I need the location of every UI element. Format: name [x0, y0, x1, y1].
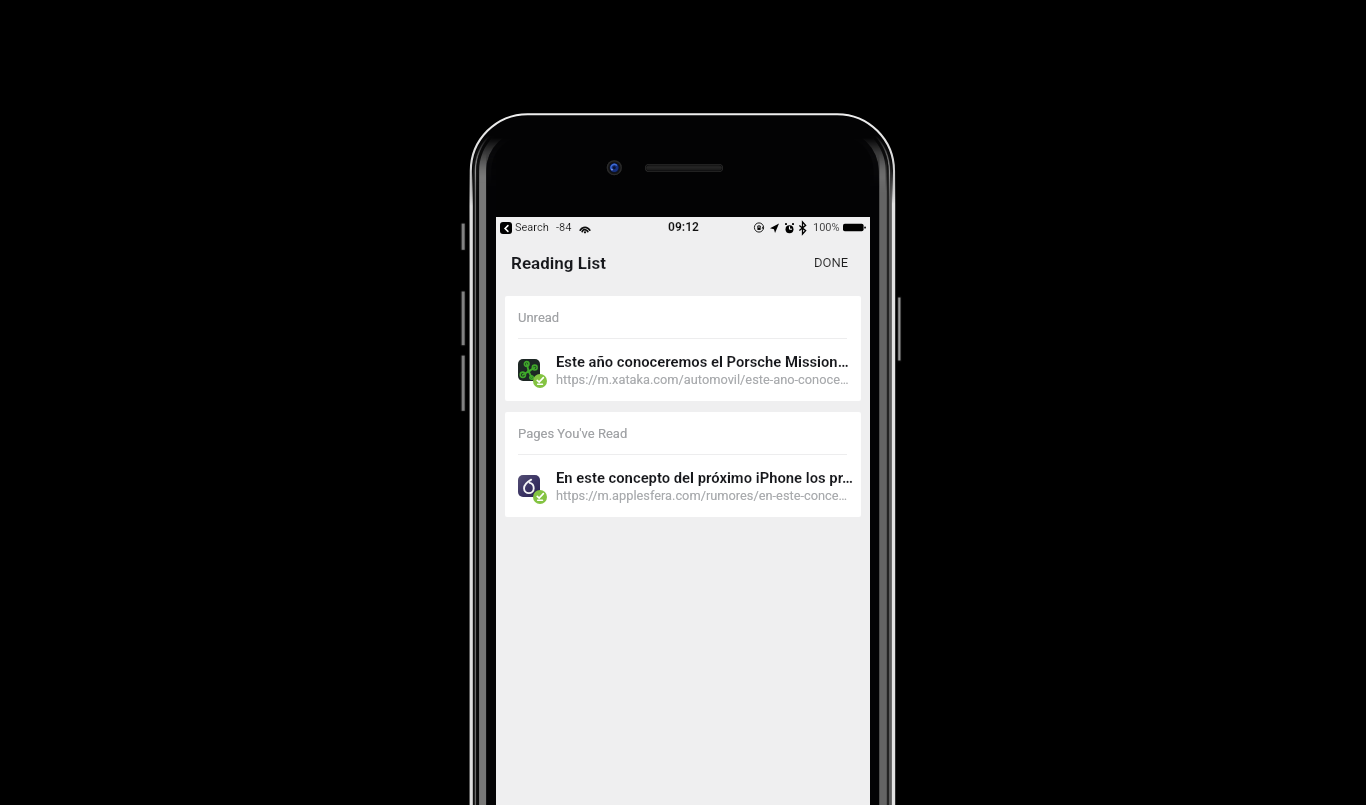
staticText: Este año conoceremos el Porsche Mission…	[556, 353, 849, 370]
staticText: Unread	[518, 310, 560, 325]
staticText: En este concepto del próximo iPhone los …	[556, 469, 853, 486]
button[interactable]: Este año conoceremos el Porsche Mission…	[505, 339, 861, 401]
staticText: Pages You've Read	[518, 426, 628, 441]
button[interactable]: Back to Search	[500, 222, 512, 234]
button[interactable]: En este concepto del próximo iPhone los …	[505, 455, 861, 517]
staticText: 09:12	[668, 220, 699, 234]
staticText: DONE	[814, 255, 849, 270]
staticText: Search	[515, 221, 549, 234]
button[interactable]: DONE	[793, 245, 870, 280]
staticText: https://m.applesfera.com/rumores/en-este…	[556, 488, 848, 503]
staticText: -84	[556, 221, 572, 234]
staticText: Reading List	[511, 253, 606, 273]
staticText: 100%	[813, 221, 840, 234]
staticText: https://m.xataka.com/automovil/este-ano-…	[556, 372, 849, 387]
